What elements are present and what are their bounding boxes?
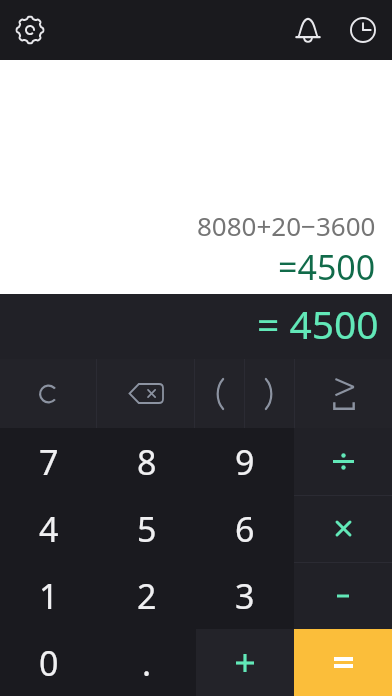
staticText: 9 <box>235 439 255 485</box>
button[interactable]: . <box>98 629 196 696</box>
button[interactable]: 9 <box>196 428 294 495</box>
button[interactable]: Subtract <box>294 562 392 629</box>
staticText: 8080+20−3600 <box>197 208 376 243</box>
button[interactable]: Backspace <box>97 359 194 428</box>
button[interactable]: 2 <box>98 562 196 629</box>
button[interactable]: 3 <box>196 562 294 629</box>
staticText: 8 <box>137 439 157 485</box>
button[interactable]: History <box>345 12 381 48</box>
staticText: 7 <box>39 439 59 485</box>
button[interactable]: Settings <box>12 12 48 48</box>
button[interactable]: Equals <box>294 629 392 696</box>
button[interactable]: Divide <box>294 428 392 495</box>
button[interactable]: 4 <box>0 495 98 562</box>
button[interactable]: Clear <box>0 359 96 428</box>
staticText: . <box>142 640 152 686</box>
button[interactable]: Close parenthesis <box>245 359 294 428</box>
staticText: 2 <box>137 573 157 619</box>
button[interactable]: Notifications <box>290 12 326 48</box>
staticText: 1 <box>39 573 59 619</box>
staticText: = 4500 <box>257 297 379 350</box>
button[interactable]: 1 <box>0 562 98 629</box>
button[interactable]: 0 <box>0 629 98 696</box>
staticText: 5 <box>137 506 157 552</box>
button[interactable]: Multiply <box>294 495 392 562</box>
button[interactable]: 5 <box>98 495 196 562</box>
staticText: 4 <box>39 506 59 552</box>
staticText: 3 <box>235 573 255 619</box>
button[interactable]: More functions <box>295 359 392 428</box>
button[interactable]: 8 <box>98 428 196 495</box>
staticText: 6 <box>235 506 255 552</box>
button[interactable]: Open parenthesis <box>195 359 244 428</box>
staticText: 0 <box>39 640 59 686</box>
button[interactable]: Add <box>196 629 294 696</box>
staticText: =4500 <box>278 244 376 290</box>
button[interactable]: 7 <box>0 428 98 495</box>
button[interactable]: 6 <box>196 495 294 562</box>
